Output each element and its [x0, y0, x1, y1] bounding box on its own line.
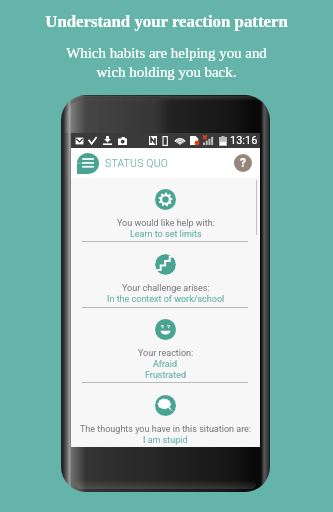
staticText: Which habits are helping you and wich ho…: [0, 45, 333, 80]
staticText: Understand your reaction pattern: [0, 12, 333, 31]
staticText: STATUS QUO: [105, 157, 169, 169]
button[interactable]: Your challenge arises:: [71, 242, 260, 307]
staticText: Afraid: [153, 359, 178, 370]
staticText: Frustrated: [145, 370, 187, 381]
button[interactable]: Open navigation menu: [77, 153, 99, 174]
staticText: ?: [240, 156, 246, 170]
staticText: Learn to set limits: [130, 229, 202, 240]
staticText: I am stupid: [143, 435, 188, 446]
button[interactable]: Help: [234, 154, 252, 172]
staticText: The thoughts you have in this situation …: [80, 424, 252, 435]
button[interactable]: You would like help with:: [71, 178, 260, 241]
staticText: In the context of work/school: [107, 294, 225, 305]
staticText: Your challenge arises:: [122, 283, 210, 294]
staticText: You would like help with:: [117, 218, 215, 229]
button[interactable]: The thoughts you have in this situation …: [71, 383, 260, 446]
staticText: Your reaction:: [138, 348, 194, 359]
button[interactable]: Your reaction:: [71, 308, 260, 382]
staticText: 13:16: [230, 134, 258, 147]
